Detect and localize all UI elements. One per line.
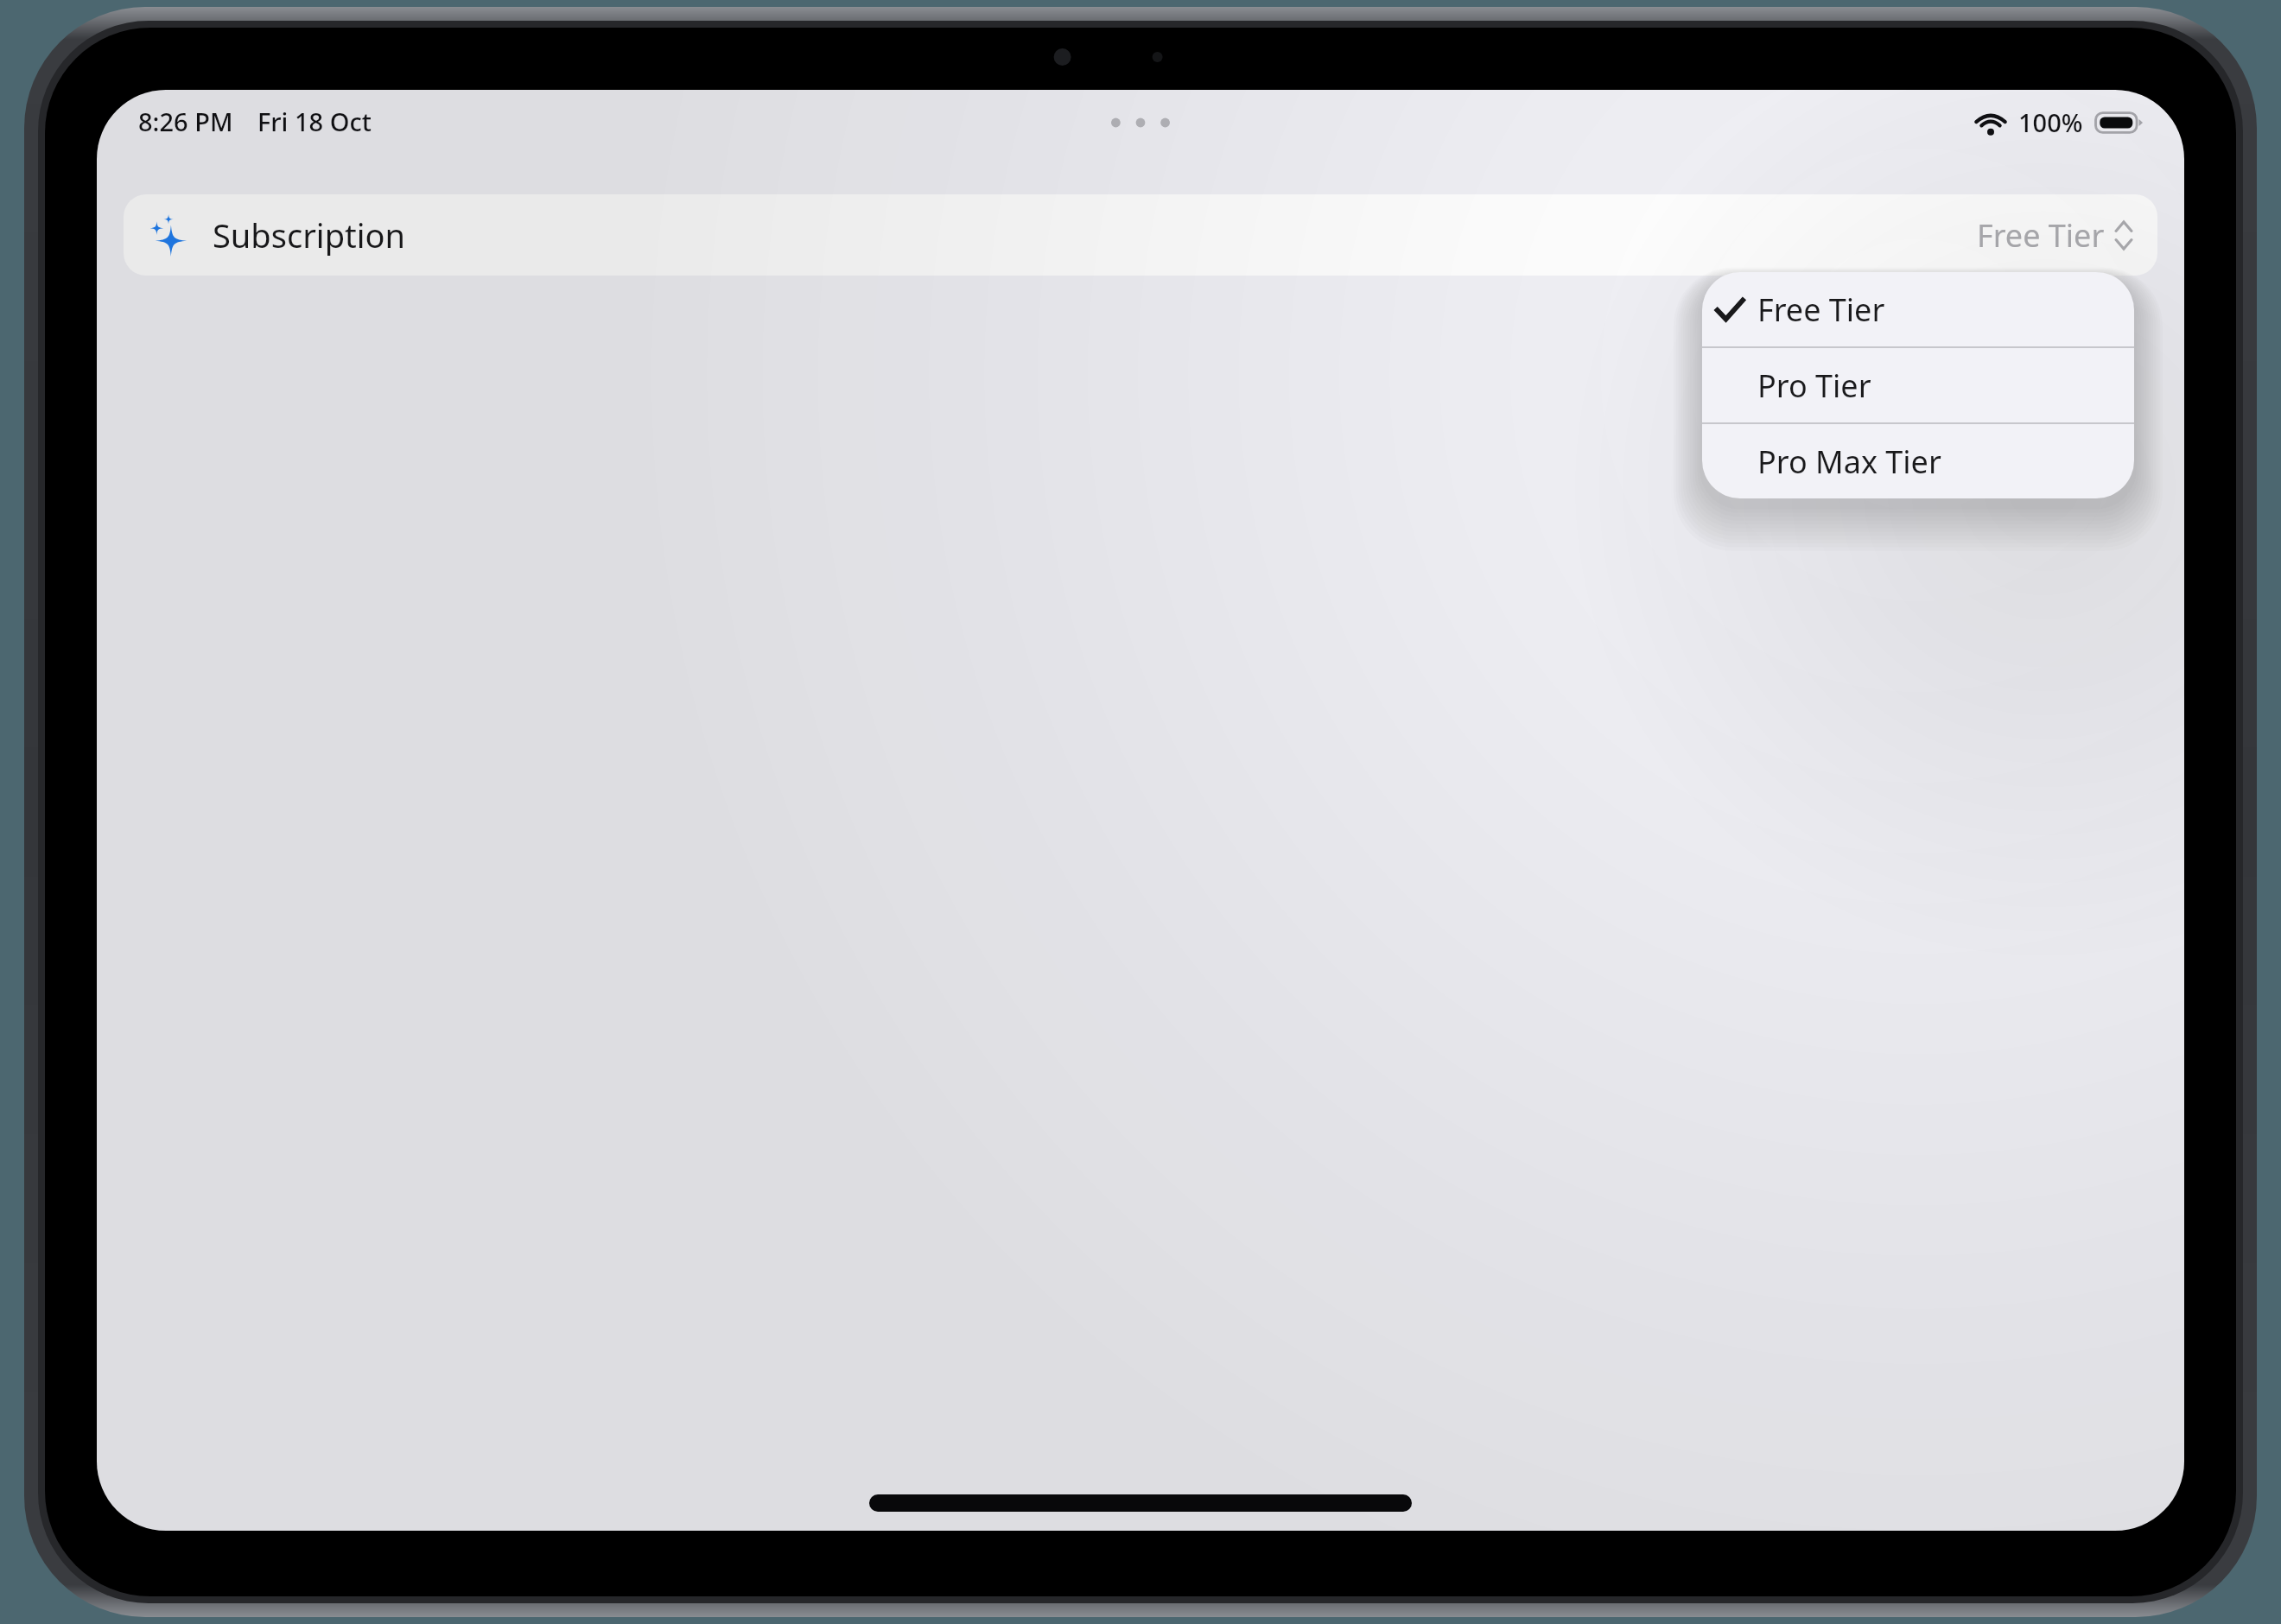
staticText: Pro Max Tier xyxy=(1757,441,1941,483)
staticText: Subscription xyxy=(213,213,406,257)
button[interactable]: Pro Max Tier xyxy=(1702,424,2134,498)
staticText: Free Tier xyxy=(1757,289,1885,331)
staticText: Pro Tier xyxy=(1757,365,1871,407)
other: Home indicator xyxy=(869,1494,1412,1512)
button[interactable]: Pro Tier xyxy=(1702,348,2134,422)
button[interactable]: Free Tier xyxy=(1702,272,2134,346)
staticText: 100% xyxy=(2018,105,2083,139)
button[interactable]: Subscription sparkles xyxy=(124,194,2157,276)
other: Subscription sparkles xyxy=(145,213,190,257)
staticText: 8:26 PM xyxy=(138,105,233,138)
staticText: Fri 18 Oct xyxy=(257,105,372,138)
staticText: Free Tier xyxy=(1977,214,2105,257)
